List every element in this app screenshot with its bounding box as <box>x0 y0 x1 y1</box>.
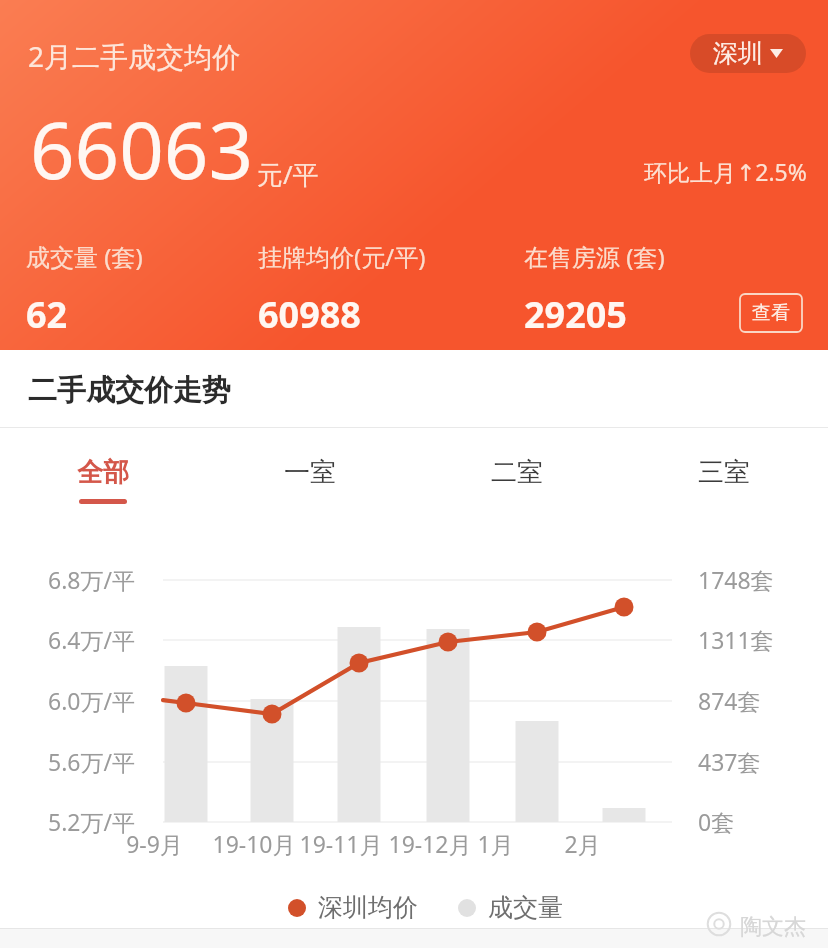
button[interactable]: 查看 <box>740 294 802 332</box>
staticText: 陶文杰 <box>740 913 806 941</box>
staticText: 2月二手成交均价 <box>28 37 241 75</box>
button[interactable]: 全部 <box>41 434 165 504</box>
staticText: 437套 <box>698 746 761 777</box>
button[interactable]: 三室 <box>662 434 786 504</box>
staticText: 0套 <box>698 806 735 837</box>
staticText: 19-11月 <box>299 828 383 859</box>
staticText: 环比上月↑2.5% <box>644 156 807 187</box>
staticText: 二手成交价走势 <box>28 372 231 409</box>
staticText: 19-10月 <box>212 828 296 859</box>
button[interactable]: 一室 <box>248 434 372 504</box>
staticText: 874套 <box>698 685 761 716</box>
staticText: 成交量 <box>488 892 563 923</box>
staticText: 在售房源 (套) <box>524 240 665 273</box>
staticText: 1748套 <box>698 564 774 595</box>
staticText: 5.6万/平 <box>48 746 136 777</box>
staticText: 成交量 (套) <box>26 240 143 273</box>
staticText: 深圳均价 <box>318 892 418 923</box>
staticText: 6.0万/平 <box>48 685 136 716</box>
staticText: 5.2万/平 <box>48 806 136 837</box>
staticText: 挂牌均价(元/平) <box>258 240 426 273</box>
staticText: 深圳 <box>713 38 763 69</box>
staticText: 66063 <box>30 96 254 202</box>
staticText: 查看 <box>752 301 790 325</box>
staticText: 19-12月 <box>388 828 472 859</box>
staticText: 2月 <box>564 828 601 859</box>
staticText: 全部 <box>77 456 129 489</box>
staticText: 6.4万/平 <box>48 624 136 655</box>
staticText: 一室 <box>284 456 336 489</box>
staticText: 元/平 <box>257 156 319 192</box>
staticText: 6.8万/平 <box>48 564 136 595</box>
staticText: 29205 <box>524 290 627 339</box>
staticText: 二室 <box>491 456 543 489</box>
staticText: 9-9月 <box>126 828 183 859</box>
other: Weibo <box>706 911 732 937</box>
button[interactable]: 二室 <box>455 434 579 504</box>
staticText: 1月 <box>477 828 514 859</box>
button[interactable]: 深圳 <box>690 34 806 73</box>
staticText: 三室 <box>698 456 750 489</box>
staticText: 1311套 <box>698 624 774 655</box>
staticText: 62 <box>26 290 68 339</box>
staticText: 60988 <box>258 290 361 339</box>
